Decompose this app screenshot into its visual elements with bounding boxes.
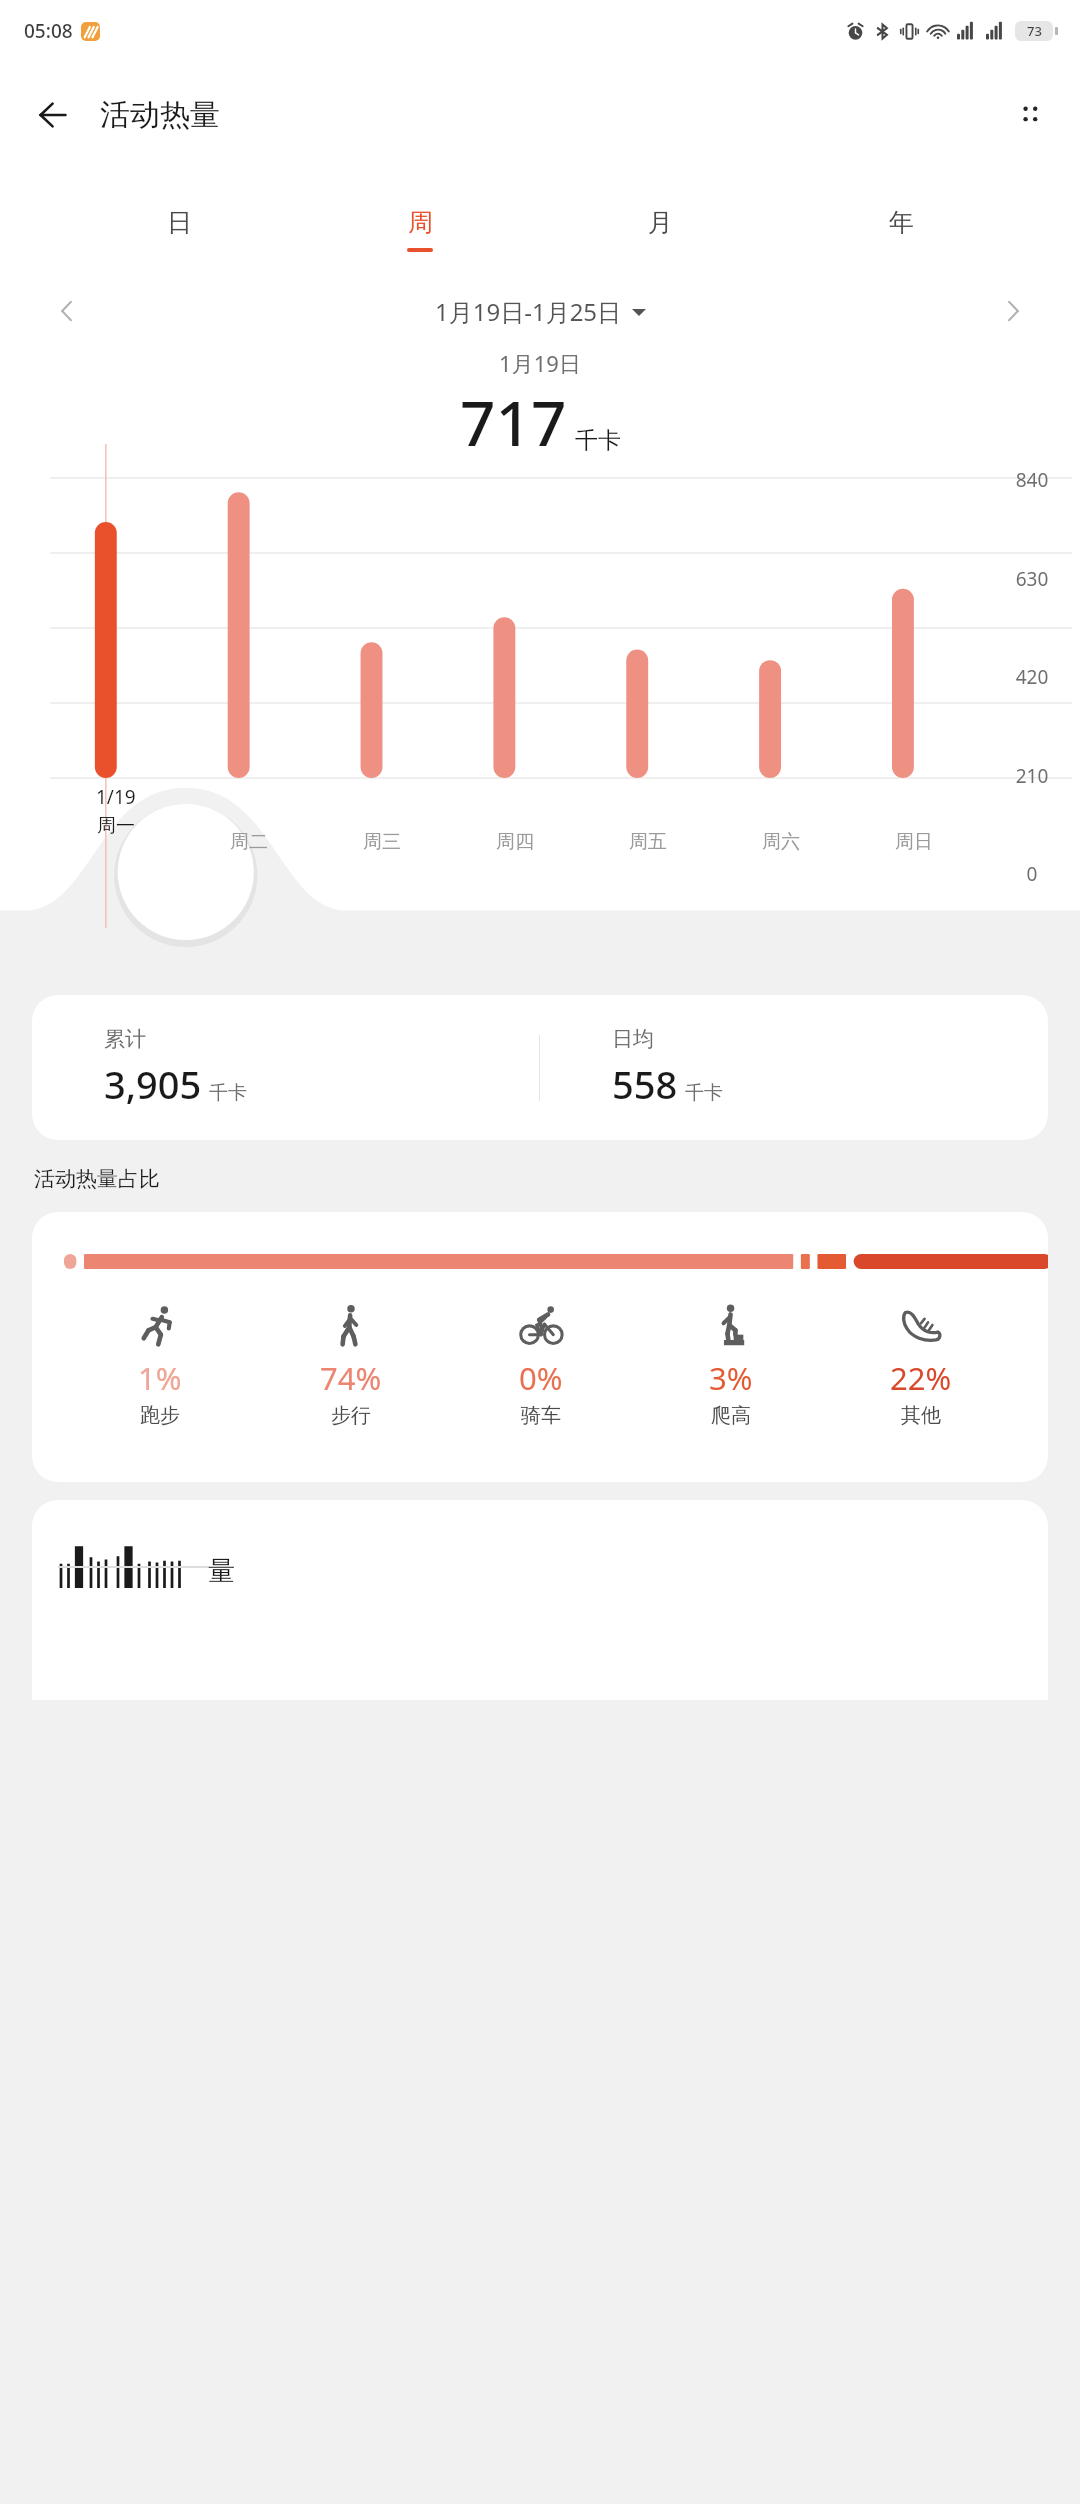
button[interactable]: 月	[631, 207, 689, 252]
button[interactable]: 1月19日-1月25日	[435, 295, 646, 328]
staticText: 周三	[363, 830, 401, 854]
staticText: 3,905	[104, 1058, 202, 1110]
staticText: 周一	[97, 814, 135, 838]
button[interactable]: 累计	[32, 995, 1048, 1140]
staticText: 千卡	[575, 426, 621, 455]
button[interactable]: 3%	[636, 1303, 826, 1428]
staticText: 周四	[496, 830, 534, 854]
staticText: 558	[612, 1058, 678, 1110]
button[interactable]: Next week	[990, 288, 1036, 334]
button[interactable]: 22%	[826, 1303, 1016, 1428]
staticText: 爬高	[711, 1403, 751, 1428]
button[interactable]: Back	[26, 89, 78, 141]
staticText: 日均	[612, 1026, 654, 1052]
button[interactable]: More options	[1004, 89, 1056, 141]
staticText: 年	[889, 207, 914, 238]
staticText: 其他	[901, 1403, 941, 1428]
button[interactable]: 1%	[32, 1212, 1048, 1482]
button[interactable]: 0%	[446, 1303, 636, 1428]
staticText: 千卡	[685, 1081, 723, 1105]
staticText: 周	[408, 207, 433, 238]
button[interactable]: 量	[32, 1500, 1048, 1700]
staticText: 步行	[331, 1403, 371, 1428]
staticText: 210	[984, 763, 1080, 789]
staticText: 活动热量	[100, 96, 220, 134]
button[interactable]: Previous week	[44, 288, 90, 334]
staticText: 3%	[709, 1357, 753, 1399]
staticText: 74%	[320, 1357, 382, 1399]
staticText: 630	[984, 566, 1080, 592]
staticText: 周六	[762, 830, 800, 854]
staticText: 73	[1027, 22, 1042, 40]
staticText: 量	[208, 1554, 235, 1588]
staticText: 周五	[629, 830, 667, 854]
staticText: 840	[984, 467, 1080, 493]
staticText: 1%	[138, 1357, 182, 1399]
staticText: 周日	[895, 830, 933, 854]
staticText: 22%	[890, 1357, 952, 1399]
staticText: 日	[167, 207, 192, 238]
staticText: 0%	[519, 1357, 563, 1399]
button[interactable]: 周	[391, 207, 449, 252]
staticText: 跑步	[140, 1403, 180, 1428]
button[interactable]: 年	[872, 207, 930, 252]
staticText: 千卡	[209, 1081, 247, 1105]
staticText: 717	[460, 380, 567, 464]
staticText: 活动热量占比	[34, 1166, 160, 1192]
button[interactable]: 日	[150, 207, 208, 252]
staticText: 月	[648, 207, 673, 238]
staticText: 累计	[104, 1026, 146, 1052]
staticText: 1月19日	[0, 348, 1080, 378]
staticText: 05:08	[24, 18, 73, 44]
staticText: 0	[984, 861, 1080, 887]
staticText: 1月19日-1月25日	[435, 295, 622, 328]
staticText: 周二	[230, 830, 268, 854]
staticText: 1/19	[96, 784, 136, 810]
button[interactable]: 74%	[255, 1303, 446, 1428]
button[interactable]: 1%	[64, 1303, 255, 1428]
staticText: 骑车	[521, 1403, 561, 1428]
staticText: 420	[984, 664, 1080, 690]
